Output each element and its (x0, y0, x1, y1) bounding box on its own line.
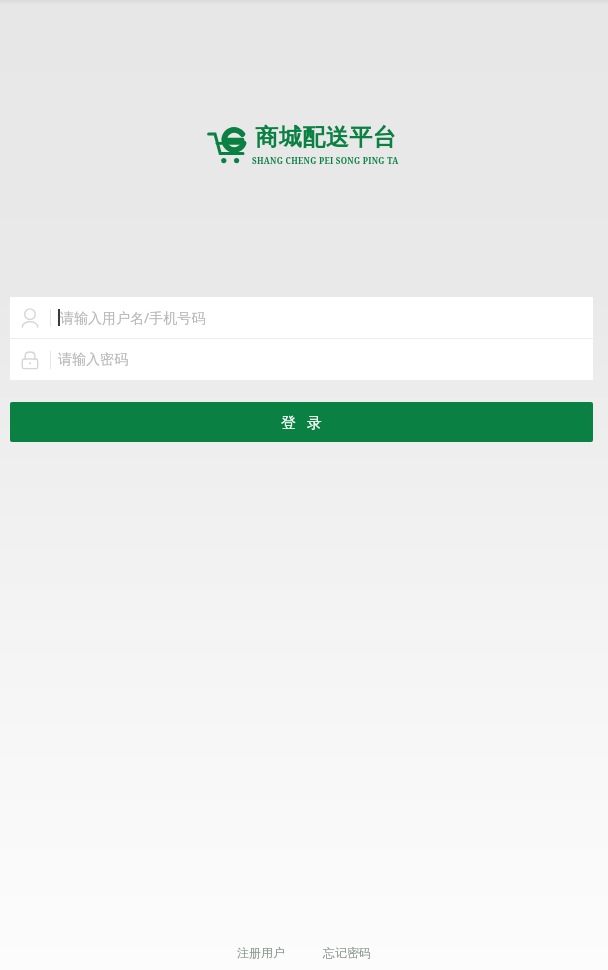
staticText: SHANG CHENG PEI SONG PING TA (252, 155, 399, 166)
button[interactable]: Username (10, 297, 593, 338)
staticText: 注册用户 (237, 945, 285, 960)
staticText: 请输入用户名/手机号码 (60, 308, 206, 327)
button[interactable]: Password (10, 339, 593, 380)
other: Password (18, 348, 42, 372)
button[interactable]: 注册用户 (231, 941, 291, 964)
staticText: 登 录 (281, 412, 323, 432)
other: Username (18, 306, 42, 330)
button[interactable]: 忘记密码 (317, 941, 377, 964)
staticText: 忘记密码 (323, 945, 371, 960)
button[interactable]: 登 录 (10, 402, 593, 442)
staticText: 请输入密码 (58, 351, 128, 369)
other: Logo (207, 124, 247, 166)
staticText: 商城配送平台 (255, 123, 396, 152)
